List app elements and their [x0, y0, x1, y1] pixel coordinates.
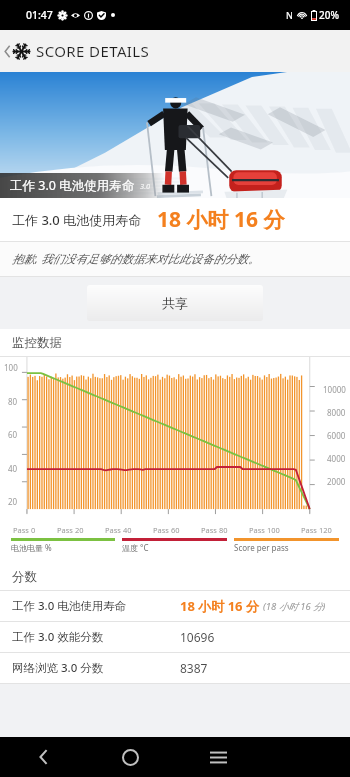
staticText: Pass 0 — [13, 525, 36, 535]
staticText: 共享 — [162, 295, 188, 311]
staticText: Pass 120 — [301, 525, 332, 535]
staticText: SCORE DETAILS — [36, 41, 150, 61]
button[interactable]: Back — [0, 36, 158, 66]
staticText: 分数 — [12, 569, 37, 585]
button[interactable]: 网络浏览 3.0 分数 — [0, 653, 350, 683]
staticText: Pass 60 — [153, 525, 180, 535]
staticText: Pass 20 — [57, 525, 84, 535]
staticText: 电池电量 % — [11, 542, 52, 553]
button[interactable]: 工作 3.0 电池使用寿命 — [0, 591, 350, 621]
staticText: 18 小时 16 分 — [180, 597, 259, 615]
staticText: Pass 100 — [249, 525, 280, 535]
staticText: N — [286, 9, 293, 21]
staticText: 抱歉, 我们没有足够的数据来对比此设备的分数。 — [12, 251, 260, 267]
staticText: 8000 — [327, 407, 346, 418]
staticText: 100 — [4, 362, 18, 373]
button[interactable]: 工作 3.0 效能分数 — [0, 622, 350, 652]
staticText: 工作 3.0 电池使用寿命 — [12, 211, 142, 229]
staticText: 60 — [8, 429, 18, 440]
staticText: Score per pass — [234, 542, 289, 553]
staticText: 18 小时 16 分 — [157, 205, 285, 234]
staticText: 工作 3.0 电池使用寿命 — [12, 598, 127, 614]
staticText: (18 小时 16 分) — [263, 600, 326, 613]
staticText: 80 — [8, 396, 18, 407]
button[interactable]: Home — [87, 737, 174, 777]
staticText: 监控数据 — [12, 335, 62, 351]
button[interactable]: 共享 — [87, 285, 263, 321]
button[interactable]: Recent apps — [174, 737, 262, 777]
staticText: 温度 °C — [122, 542, 149, 553]
button[interactable]: Back — [0, 737, 87, 777]
staticText: 3.0 — [140, 181, 151, 191]
staticText: Pass 40 — [105, 525, 132, 535]
staticText: 20% — [319, 8, 339, 22]
staticText: 10000 — [323, 384, 346, 395]
staticText: 40 — [8, 463, 18, 474]
staticText: 网络浏览 3.0 分数 — [12, 660, 104, 676]
staticText: 01:47 — [26, 8, 53, 22]
staticText: 工作 3.0 效能分数 — [12, 629, 104, 645]
staticText: 2000 — [327, 476, 346, 487]
staticText: 6000 — [327, 430, 346, 441]
staticText: 10696 — [180, 629, 215, 645]
staticText: 4000 — [327, 453, 346, 464]
staticText: Pass 80 — [201, 525, 228, 535]
staticText: 20 — [8, 496, 18, 507]
staticText: 8387 — [180, 660, 208, 676]
staticText: 工作 3.0 电池使用寿命 — [10, 177, 135, 194]
